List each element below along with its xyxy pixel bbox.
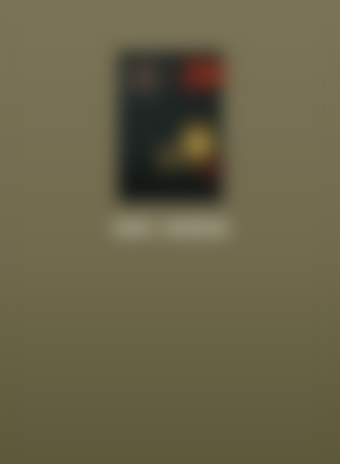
button[interactable]: Collapse player [0, 0, 340, 464]
button[interactable]: Next chapter [0, 0, 340, 464]
button[interactable]: 下载 [0, 0, 340, 464]
button[interactable]: Play [0, 0, 340, 464]
button[interactable]: Skip forward 15 seconds [0, 0, 340, 464]
button[interactable]: 加入书架 [0, 0, 340, 464]
button[interactable]: Previous chapter [0, 0, 340, 464]
button[interactable]: Skip back 15 seconds [0, 0, 340, 464]
